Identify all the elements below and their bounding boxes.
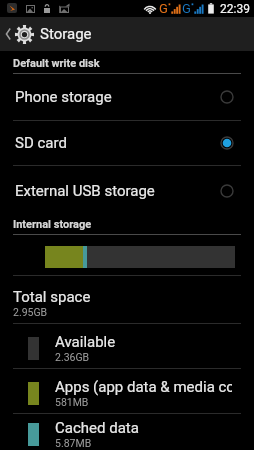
staticText: 2.95GB xyxy=(13,306,48,318)
staticText: 581MB xyxy=(55,396,89,408)
button[interactable]: Phone storage xyxy=(0,74,254,120)
staticText: SD card xyxy=(15,134,67,152)
button[interactable]: SD card xyxy=(0,121,254,165)
staticText: Total space xyxy=(13,288,91,306)
button[interactable]: Navigate up xyxy=(0,17,37,51)
staticText: Cached data xyxy=(55,419,139,437)
button[interactable]: Cached data xyxy=(0,414,254,450)
staticText: Available xyxy=(55,333,116,351)
button[interactable]: Apps (app data & media content) xyxy=(0,369,254,413)
button[interactable]: Available xyxy=(0,324,254,368)
staticText: Phone storage xyxy=(15,88,112,106)
staticText: Internal storage xyxy=(13,218,92,231)
button[interactable]: Total space xyxy=(0,276,254,323)
staticText: Default write disk xyxy=(13,57,100,70)
staticText: 2.36GB xyxy=(55,351,90,363)
staticText: External USB storage xyxy=(15,182,155,200)
staticText: G xyxy=(159,1,168,14)
staticText: Storage xyxy=(40,25,92,43)
staticText: Apps (app data & media content) xyxy=(55,378,232,396)
staticText: 22:39 xyxy=(220,2,250,16)
staticText: 5.87MB xyxy=(55,437,92,449)
button[interactable]: External USB storage xyxy=(0,166,254,216)
staticText: G xyxy=(182,1,191,14)
